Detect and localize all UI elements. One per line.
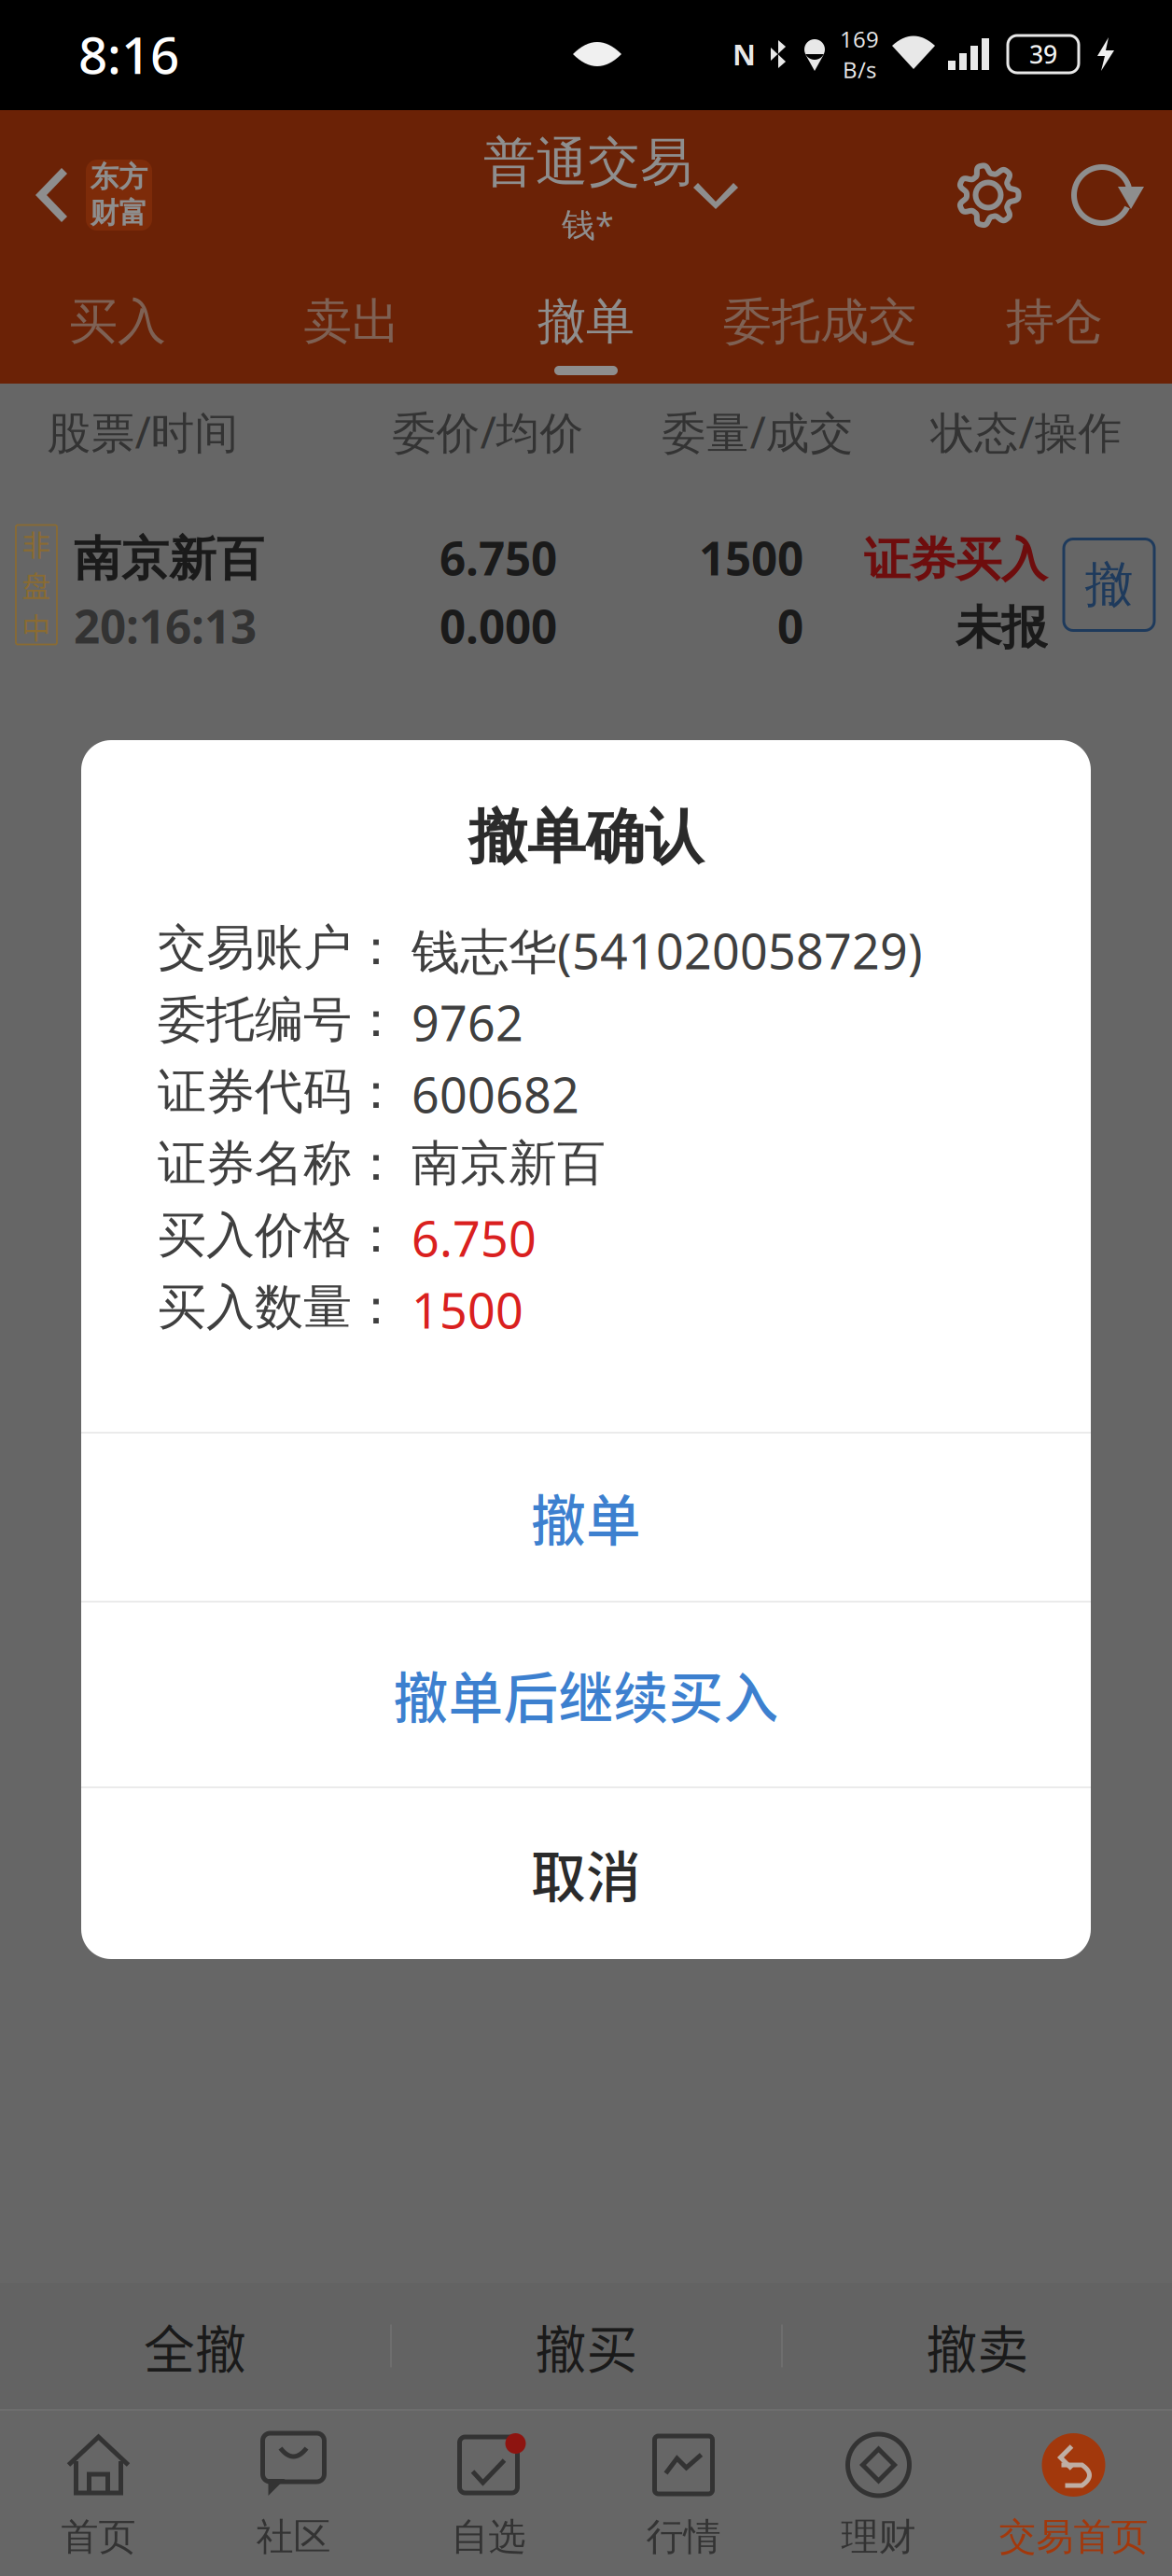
staticText: 未报 <box>956 599 1047 657</box>
button[interactable]: 撤单后继续买入 <box>81 1603 1091 1786</box>
staticText: 南京新百 <box>74 529 264 589</box>
staticText: 普通交易 <box>483 129 692 195</box>
staticText: 钱* <box>562 201 614 247</box>
button[interactable]: 委托成交 <box>703 271 937 384</box>
staticText: 状态/操作 <box>931 402 1122 461</box>
button[interactable]: 理财 <box>781 2411 976 2576</box>
button[interactable]: 普通交易 <box>199 125 970 265</box>
staticText: 交易首页 <box>999 2513 1148 2561</box>
button[interactable]: 返回 <box>17 147 86 243</box>
button[interactable]: 撤买 <box>392 2283 781 2409</box>
button[interactable]: 撤单 <box>81 1434 1091 1601</box>
staticText: 169 <box>840 24 879 54</box>
staticText: 20:16:13 <box>74 594 257 657</box>
staticText: 0 <box>777 594 803 657</box>
staticText: 财富 <box>90 195 148 231</box>
button[interactable]: 持仓 <box>937 271 1172 384</box>
button[interactable]: 撤单 <box>469 271 703 384</box>
staticText: 首页 <box>61 2513 136 2561</box>
button[interactable]: 首页 <box>1 2411 196 2576</box>
staticText: 撤 <box>1085 554 1133 615</box>
staticText: 非 <box>22 523 51 564</box>
staticText: 600682 <box>412 1061 579 1127</box>
button[interactable]: 行情 <box>586 2411 781 2576</box>
button[interactable]: 交易首页 <box>976 2411 1171 2576</box>
staticText: 行情 <box>646 2513 721 2561</box>
button[interactable]: 买入 <box>0 271 235 384</box>
button[interactable]: 设置 <box>942 161 1034 230</box>
staticText: 持仓 <box>1006 291 1103 352</box>
staticText: 东方 <box>90 159 148 195</box>
staticText: 1500 <box>699 526 803 589</box>
staticText: 买入数量： <box>158 1277 400 1338</box>
staticText: 撤买 <box>535 2309 638 2383</box>
staticText: 6.750 <box>412 1205 537 1271</box>
staticText: B/s <box>843 54 876 85</box>
staticText: 39 <box>1029 37 1057 71</box>
button[interactable]: 全撤 <box>0 2283 390 2409</box>
staticText: 撤单 <box>531 1477 641 1557</box>
button[interactable]: 取消 <box>81 1788 1091 1959</box>
button[interactable]: 卖出 <box>235 271 469 384</box>
button[interactable]: 刷新 <box>1060 161 1151 230</box>
staticText: 股票/时间 <box>47 402 238 461</box>
staticText: 南京新百 <box>412 1133 606 1194</box>
staticText: 自选 <box>451 2513 526 2561</box>
staticText: 委量/成交 <box>662 402 853 461</box>
staticText: 中 <box>22 605 51 647</box>
staticText: 理财 <box>841 2513 916 2561</box>
button[interactable]: 社区 <box>196 2411 391 2576</box>
staticText: 取消 <box>531 1834 641 1913</box>
staticText: 全撤 <box>144 2309 246 2383</box>
staticText: 卖出 <box>303 291 400 352</box>
staticText: N <box>732 35 756 74</box>
staticText: 撤单 <box>537 291 635 352</box>
staticText: 委托编号： <box>158 989 400 1050</box>
staticText: 8:16 <box>78 19 179 89</box>
staticText: 买入 <box>69 291 166 352</box>
button[interactable]: 撤卖 <box>783 2283 1172 2409</box>
staticText: 委价/均价 <box>392 402 584 461</box>
staticText: 1500 <box>412 1277 523 1343</box>
staticText: 撤单确认 <box>468 800 704 874</box>
staticText: 钱志华(541020058729) <box>412 917 923 984</box>
staticText: 买入价格： <box>158 1205 400 1266</box>
staticText: 证券名称： <box>158 1133 400 1194</box>
staticText: 证券买入 <box>864 531 1047 589</box>
button[interactable]: 撤 <box>1064 539 1154 630</box>
staticText: 委托成交 <box>723 291 917 352</box>
staticText: 撤单后继续买入 <box>393 1655 779 1734</box>
staticText: 9762 <box>412 989 523 1055</box>
staticText: 盘 <box>22 564 51 605</box>
staticText: 撤卖 <box>926 2309 1029 2383</box>
button[interactable]: 自选 <box>391 2411 586 2576</box>
staticText: 6.750 <box>439 526 557 589</box>
button[interactable]: 东方财富 <box>86 160 152 231</box>
staticText: 社区 <box>256 2513 331 2561</box>
staticText: 证券代码： <box>158 1061 400 1122</box>
staticText: 交易账户： <box>158 917 400 979</box>
staticText: 0.000 <box>439 594 557 657</box>
